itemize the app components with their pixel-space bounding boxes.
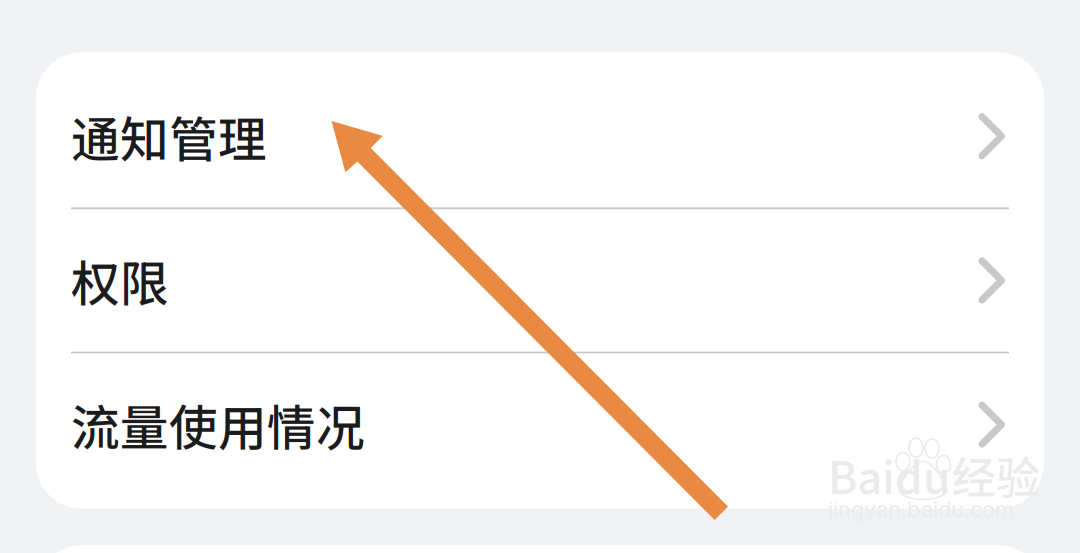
button[interactable]: 通知管理 (36, 65, 1044, 207)
button[interactable]: 权限 (36, 209, 1044, 352)
staticText: 流量使用情况 (71, 389, 365, 460)
staticText: 权限 (71, 245, 169, 316)
staticText: Baidu (828, 443, 950, 507)
staticText: 通知管理 (71, 101, 267, 171)
staticText: 经验 (952, 443, 1040, 507)
button[interactable]: 流量使用情况 (36, 353, 1044, 496)
staticText: jingyan.baidu.com (828, 496, 1014, 523)
